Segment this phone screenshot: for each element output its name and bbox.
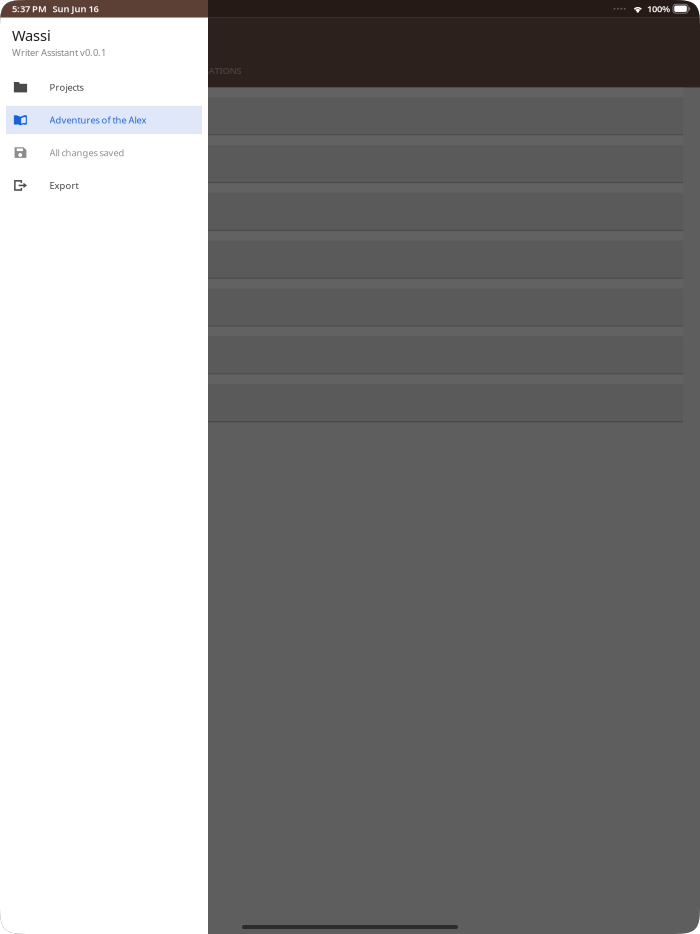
staticText: Writer Assistant v0.0.1	[12, 46, 106, 58]
button[interactable]: All changes saved	[0, 138, 208, 167]
button[interactable]: Projects	[0, 73, 208, 101]
button[interactable]: Export	[0, 171, 208, 199]
staticText: Adventures of the Alex	[49, 114, 146, 126]
staticText: Sun Jun 16	[52, 3, 98, 15]
staticText: Wassi	[12, 26, 51, 45]
staticText: CONVERSATIONS	[166, 64, 241, 77]
staticText: All changes saved	[49, 146, 124, 159]
staticText: 100%	[647, 3, 670, 15]
staticText: Export	[49, 179, 78, 191]
staticText: Projects	[49, 81, 83, 93]
button[interactable]: Adventures of the Alex	[0, 106, 208, 134]
staticText: 5:37 PM	[12, 3, 47, 15]
